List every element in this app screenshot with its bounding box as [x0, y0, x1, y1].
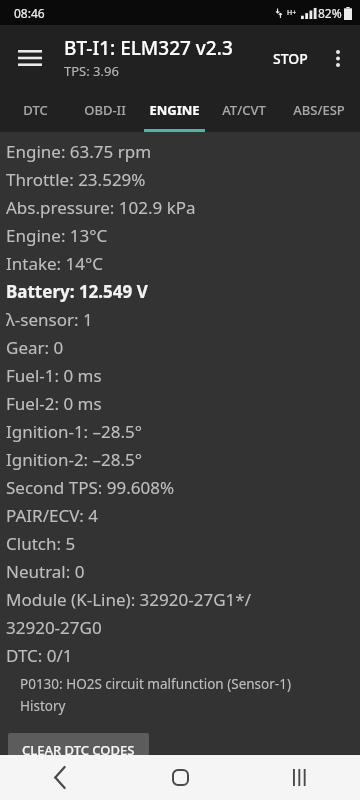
staticText: CLEAR DTC CODES [22, 741, 135, 755]
staticText: STOP [273, 49, 308, 68]
button[interactable]: AT/CVT [209, 90, 278, 132]
button[interactable]: CLEAR DTC CODES [8, 733, 149, 755]
staticText: 32920-27G0 [6, 616, 102, 639]
staticText: PAIR/ECV: 4 [6, 504, 99, 527]
button[interactable]: Module (K-Line): 32920-27G1*/ [0, 585, 360, 613]
button[interactable]: λ-sensor: 1 [0, 305, 360, 333]
staticText: H+ [287, 8, 297, 18]
staticText: DTC [23, 101, 48, 119]
staticText: Fuel-2: 0 ms [6, 392, 102, 415]
staticText: 08:46 [14, 5, 45, 21]
button[interactable]: Fuel-2: 0 ms [0, 389, 360, 417]
staticText: Engine: 63.75 rpm [6, 140, 152, 163]
staticText: Module (K-Line): 32920-27G1*/ [6, 588, 251, 611]
staticText: Engine: 13°C [6, 224, 108, 247]
button[interactable]: OBD-II [70, 90, 140, 132]
button[interactable]: Ignition-2: –28.5° [0, 445, 360, 473]
button[interactable]: Fuel-1: 0 ms [0, 361, 360, 389]
button[interactable]: STOP [265, 34, 316, 82]
staticText: Neutral: 0 [6, 560, 85, 583]
staticText: Abs.pressure: 102.9 kPa [6, 196, 196, 219]
button[interactable]: Home [120, 755, 240, 800]
button[interactable]: P0130: HO2S circuit malfunction (Sensor-… [0, 675, 360, 715]
button[interactable]: ABS/ESP [278, 90, 360, 132]
button[interactable]: Engine: 63.75 rpm [0, 137, 360, 165]
staticText: Throttle: 23.529% [6, 168, 146, 191]
button[interactable]: Intake: 14°C [0, 249, 360, 277]
button[interactable]: DTC: 0/1 [0, 641, 360, 669]
button[interactable]: Recent apps [240, 755, 360, 800]
staticText: Clutch: 5 [6, 532, 76, 555]
staticText: BT-I1: ELM327 v2.3 [64, 35, 233, 61]
button[interactable]: Battery: 12.549 V [0, 277, 360, 305]
button[interactable]: Neutral: 0 [0, 557, 360, 585]
button[interactable]: Abs.pressure: 102.9 kPa [0, 193, 360, 221]
staticText: Ignition-1: –28.5° [6, 420, 143, 443]
button[interactable]: 32920-27G0 [0, 613, 360, 641]
button[interactable]: More options [316, 36, 360, 80]
staticText: AT/CVT [222, 101, 266, 119]
staticText: Second TPS: 99.608% [6, 476, 175, 499]
button[interactable]: PAIR/ECV: 4 [0, 501, 360, 529]
button[interactable]: ENGINE [140, 90, 209, 132]
staticText: DTC: 0/1 [6, 644, 73, 667]
staticText: Gear: 0 [6, 336, 64, 359]
button[interactable]: Throttle: 23.529% [0, 165, 360, 193]
staticText: 82% [318, 5, 342, 21]
staticText: TPS: 3.96 [64, 62, 119, 80]
staticText: λ-sensor: 1 [6, 308, 93, 331]
button[interactable]: DTC [0, 90, 70, 132]
staticText: History [20, 697, 66, 715]
button[interactable]: Clutch: 5 [0, 529, 360, 557]
button[interactable]: Engine: 13°C [0, 221, 360, 249]
staticText: Fuel-1: 0 ms [6, 364, 102, 387]
button[interactable]: Gear: 0 [0, 333, 360, 361]
staticText: P0130: HO2S circuit malfunction (Sensor-… [20, 675, 291, 693]
staticText: ENGINE [149, 101, 200, 119]
button[interactable]: Open navigation menu [6, 34, 54, 82]
staticText: ABS/ESP [293, 101, 345, 119]
button[interactable]: Ignition-1: –28.5° [0, 417, 360, 445]
staticText: Ignition-2: –28.5° [6, 448, 143, 471]
button[interactable]: Second TPS: 99.608% [0, 473, 360, 501]
button[interactable]: Back [0, 755, 120, 800]
staticText: Intake: 14°C [6, 252, 104, 275]
staticText: Battery: 12.549 V [6, 280, 148, 303]
staticText: OBD-II [84, 101, 126, 119]
